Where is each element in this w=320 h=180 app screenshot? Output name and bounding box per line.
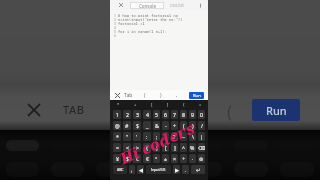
button[interactable]: 3 (133, 110, 141, 119)
staticText: < (126, 144, 129, 151)
button[interactable]: · (189, 154, 196, 163)
button[interactable]: @ (113, 121, 121, 130)
staticText: TAB (63, 102, 85, 117)
staticText: 3 (136, 111, 139, 118)
staticText: + (173, 122, 176, 129)
button[interactable]: * (110, 100, 127, 109)
button[interactable]: [ (144, 100, 160, 109)
button[interactable]: { (176, 100, 192, 109)
button[interactable]: out.txt (170, 2, 184, 8)
button[interactable]: Close (118, 2, 124, 8)
staticText: 6 (110, 33, 116, 37)
button[interactable]: € (143, 154, 151, 163)
button[interactable]: ] (160, 100, 176, 109)
button[interactable]: ± (162, 154, 169, 163)
button[interactable]: ¢ (133, 154, 141, 163)
button[interactable]: = (192, 100, 208, 109)
button[interactable]: > (133, 143, 141, 152)
button[interactable]: / (198, 121, 205, 130)
button[interactable]: ] (171, 143, 178, 152)
button[interactable]: & (153, 121, 160, 130)
button[interactable]: 7 (171, 110, 178, 119)
staticText: ) (192, 122, 194, 129)
button[interactable]: < (123, 143, 131, 152)
button[interactable]: } (153, 143, 160, 152)
staticText: ( (183, 122, 185, 129)
button[interactable]: ' (133, 132, 141, 141)
button[interactable]: × (171, 154, 178, 163)
button[interactable]: ! (162, 132, 169, 141)
button[interactable]: ÷ (180, 154, 187, 163)
staticText: 5 (155, 111, 158, 118)
button[interactable]: 6 (162, 110, 169, 119)
button[interactable]: ~ (180, 132, 187, 141)
button[interactable]: 4 (143, 110, 151, 119)
staticText: ◀ (139, 167, 143, 173)
button[interactable]: Input/US (146, 165, 171, 174)
button[interactable]: 8 (180, 110, 187, 119)
button[interactable]: ? (171, 132, 178, 141)
button[interactable]: = (113, 143, 121, 152)
button[interactable]: ) (189, 121, 196, 130)
button[interactable]: More options (197, 2, 203, 8)
button[interactable]: Close (26, 102, 41, 117)
staticText: factorial =1 (118, 21, 145, 25)
button[interactable]: ↵ (191, 165, 205, 174)
button[interactable]: $ (123, 154, 131, 163)
button[interactable]: * (113, 132, 121, 141)
button[interactable]: ( (180, 121, 187, 130)
button[interactable]: + (127, 100, 144, 109)
button[interactable]: " (123, 132, 131, 141)
button[interactable]: : (143, 132, 151, 141)
button[interactable]: { (143, 143, 151, 152)
button[interactable]: 9 (189, 110, 196, 119)
staticText: 0 (200, 111, 203, 118)
staticText: = (116, 144, 119, 151)
staticText: 9 (191, 111, 194, 118)
button[interactable]: | (198, 132, 205, 141)
button[interactable]: - (162, 121, 169, 130)
button[interactable]: $ (133, 121, 141, 130)
button[interactable]: ▶ (173, 165, 180, 174)
button[interactable]: , (173, 91, 180, 100)
staticText: [ (165, 144, 167, 151)
staticText: for i in range(1,n+1): (118, 29, 167, 33)
button[interactable]: ° (153, 154, 160, 163)
staticText: Console (139, 3, 156, 9)
staticText: ¢ (136, 155, 139, 162)
button[interactable]: Console (130, 2, 164, 9)
button[interactable]: ; (153, 132, 160, 141)
button[interactable]: 1 (113, 110, 121, 119)
button[interactable]: _ (143, 121, 151, 130)
button[interactable]: TAB (63, 101, 85, 118)
button[interactable]: ABC (113, 165, 127, 174)
button[interactable]: \ (189, 132, 196, 141)
staticText: Tab (124, 92, 133, 99)
button[interactable]: 5 (153, 110, 160, 119)
staticText: ; (156, 133, 158, 140)
button[interactable]: 2 (123, 110, 131, 119)
staticText: \ (192, 133, 194, 140)
staticText: | (200, 133, 203, 140)
staticText: @ (115, 122, 120, 129)
button[interactable]: . (182, 165, 189, 174)
button[interactable]: ^ (180, 143, 187, 152)
button[interactable]: 0 (198, 110, 205, 119)
button[interactable]: ⌫ (198, 143, 205, 152)
button[interactable]: Tab (124, 92, 133, 99)
staticText: € (146, 155, 149, 162)
button[interactable]: + (171, 121, 178, 130)
button[interactable]: Run (189, 92, 204, 99)
button[interactable]: ) (157, 91, 164, 100)
button[interactable]: % (189, 143, 196, 152)
button[interactable]: ( (141, 91, 148, 100)
button[interactable]: , (129, 165, 135, 174)
button[interactable]: # (123, 121, 131, 130)
button[interactable]: Close keyboard (114, 92, 121, 99)
button[interactable]: Run (252, 99, 300, 121)
button[interactable]: ⊛ (198, 154, 205, 163)
staticText: ^ (182, 144, 185, 151)
button[interactable]: ◀ (137, 165, 144, 174)
button[interactable]: [ (162, 143, 169, 152)
button[interactable]: ¥ (113, 154, 121, 163)
